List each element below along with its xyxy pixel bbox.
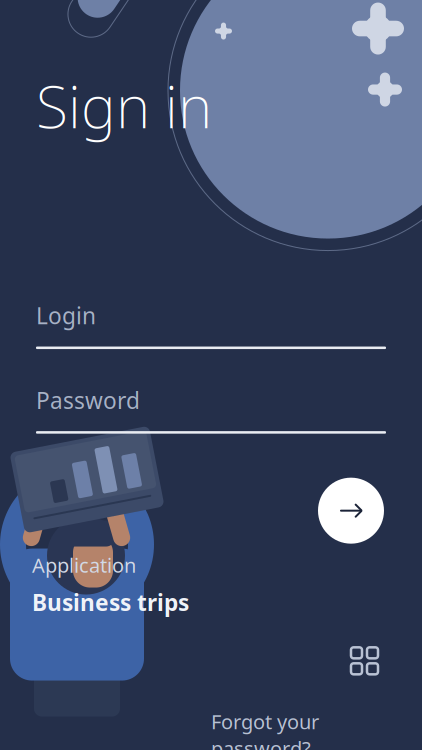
staticText: Sign in xyxy=(36,67,212,144)
staticText: Password xyxy=(36,385,140,415)
staticText: Forgot your password? xyxy=(211,708,319,750)
staticText: Login xyxy=(36,300,96,331)
staticText: Application xyxy=(32,552,136,578)
button[interactable]: Forgot your password? xyxy=(211,708,388,750)
button[interactable]: Apps xyxy=(343,639,386,682)
button[interactable]: Login xyxy=(36,300,386,349)
staticText: Business trips xyxy=(32,587,189,617)
button[interactable]: Sign in xyxy=(318,478,384,544)
button[interactable]: Password xyxy=(36,385,386,434)
